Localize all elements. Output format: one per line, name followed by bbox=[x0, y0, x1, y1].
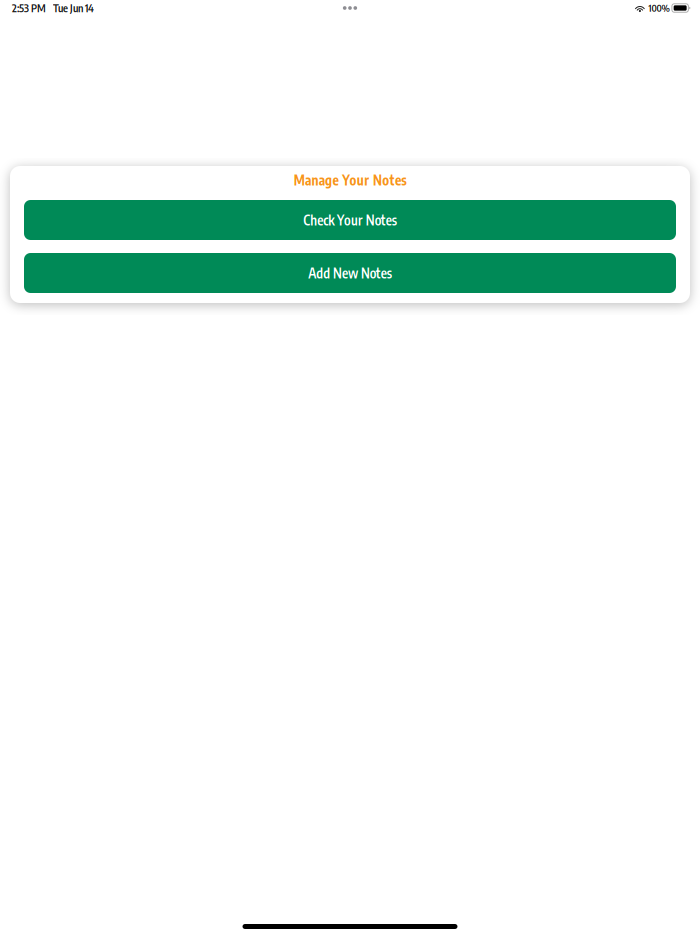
button[interactable]: Check Your Notes bbox=[24, 200, 676, 240]
staticText: Add New Notes bbox=[308, 265, 392, 281]
button[interactable]: Add New Notes bbox=[24, 253, 676, 293]
staticText: Manage Your Notes bbox=[294, 172, 406, 188]
staticText: Check Your Notes bbox=[303, 212, 397, 228]
staticText: Tue Jun 14 bbox=[53, 1, 94, 15]
staticText: 2:53 PM bbox=[12, 1, 46, 15]
staticText: 100% bbox=[648, 2, 669, 14]
